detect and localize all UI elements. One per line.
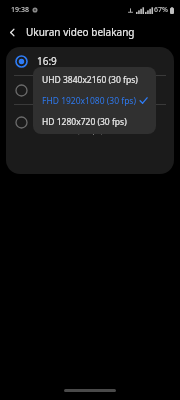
staticText: 67% (154, 5, 168, 15)
staticText: 19:38 (11, 5, 29, 15)
button[interactable]: 16:9 (6, 47, 174, 75)
staticText: FHD 1920x1080 (30 fps) (42, 95, 136, 107)
staticText: UHD 3840x2160 (30 fps) (42, 74, 138, 86)
staticText: 2448x3264 (30 fps) (37, 93, 104, 103)
staticText: 1440x1440 (30 fps) (37, 125, 104, 135)
staticText: Ukuran video belakang (26, 25, 135, 39)
staticText: 16:9 (37, 54, 57, 68)
button[interactable]: 3:4 (6, 76, 174, 104)
button[interactable]: 1:1 (6, 108, 174, 136)
button[interactable]: FHD 1920x1080 (30 fps) (33, 90, 156, 111)
staticText: 1:1 (37, 110, 52, 124)
button[interactable]: HD 1280x720 (30 fps) (33, 111, 156, 132)
button[interactable]: Back (0, 20, 24, 44)
staticText: HD 1280x720 (30 fps) (42, 116, 127, 128)
button[interactable]: UHD 3840x2160 (30 fps) (33, 69, 156, 90)
staticText: 3:4 (37, 78, 52, 92)
